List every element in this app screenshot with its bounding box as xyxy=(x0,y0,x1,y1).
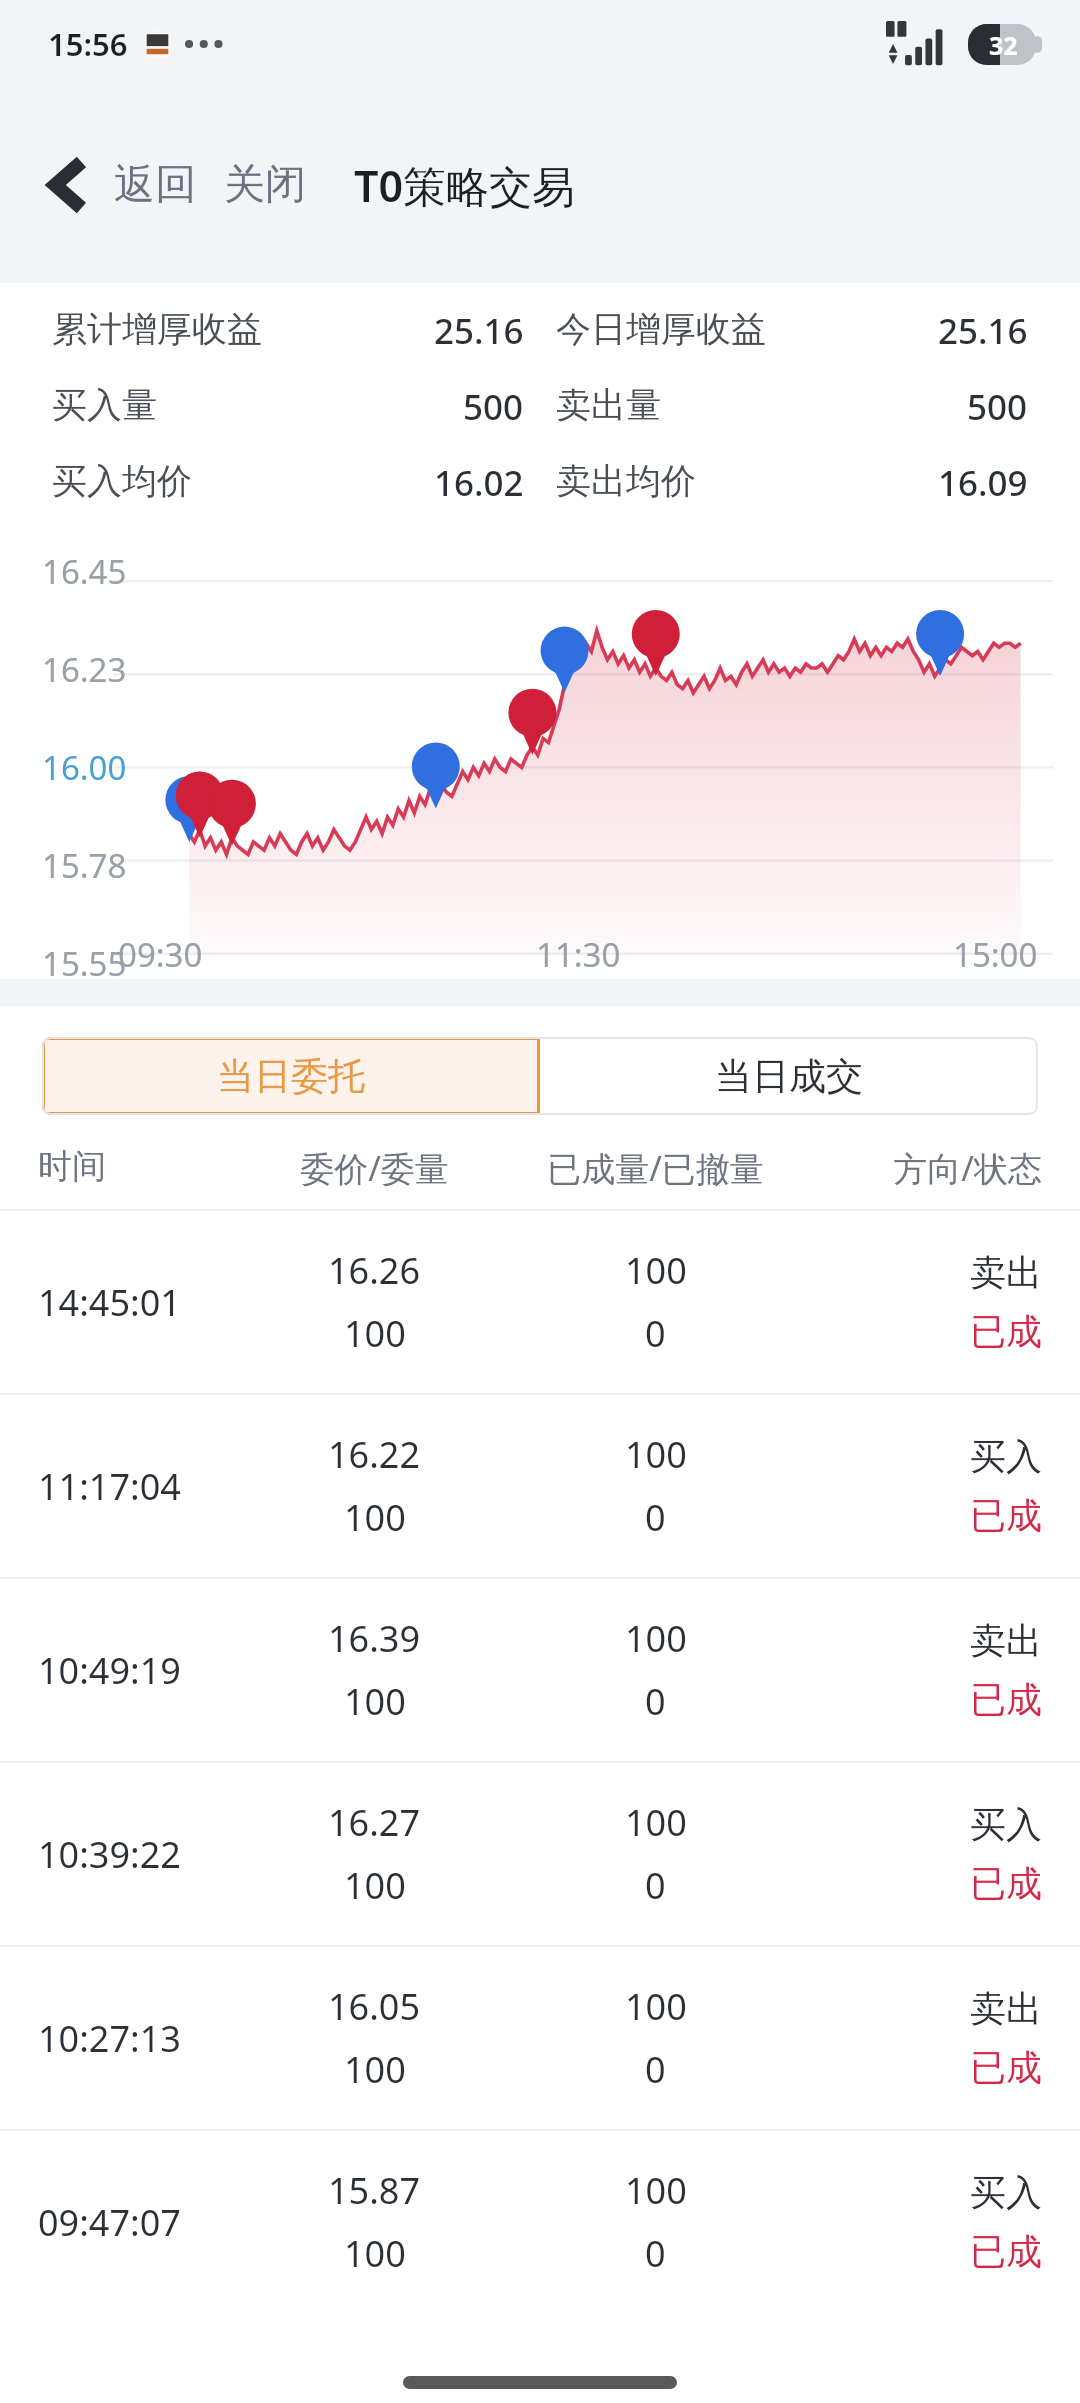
staticText: 16.45 xyxy=(42,549,127,594)
staticText: 100 xyxy=(625,1430,687,1479)
staticText: 卖出 xyxy=(970,1250,1042,1295)
staticText: T0策略交易 xyxy=(354,156,576,215)
button[interactable]: 返回 xyxy=(30,147,106,223)
staticText: 卖出 xyxy=(970,1618,1042,1663)
staticText: 10:39:22 xyxy=(38,1830,249,1879)
staticText: 关闭 xyxy=(224,159,306,211)
staticText: 100 xyxy=(344,2229,406,2278)
staticText: 25.16 xyxy=(434,307,524,355)
staticText: 15.78 xyxy=(42,843,127,888)
staticText: 已成 xyxy=(970,2229,1042,2274)
staticText: 今日增厚收益 xyxy=(556,307,766,351)
staticText: 16.27 xyxy=(328,1798,421,1847)
staticText: 买入 xyxy=(970,1802,1042,1847)
staticText: 100 xyxy=(625,2166,687,2215)
staticText: 100 xyxy=(344,1677,406,1726)
staticText: 16.09 xyxy=(938,459,1028,507)
staticText: 买入 xyxy=(970,2170,1042,2215)
staticText: 15:56 xyxy=(48,23,128,65)
staticText: 500 xyxy=(463,383,524,431)
staticText: 16.22 xyxy=(328,1430,421,1479)
staticText: 委价/委量 xyxy=(249,1145,500,1191)
staticText: 100 xyxy=(625,1982,687,2031)
staticText: 卖出均价 xyxy=(556,459,696,503)
staticText: 0 xyxy=(645,1677,666,1726)
staticText: 100 xyxy=(625,1798,687,1847)
staticText: 已成量/已撤量 xyxy=(500,1145,811,1191)
staticText: 25.16 xyxy=(938,307,1028,355)
button[interactable]: 09:47:07 xyxy=(0,2131,1080,2313)
staticText: 买入 xyxy=(970,1434,1042,1479)
staticText: 买入量 xyxy=(52,383,157,427)
staticText: 0 xyxy=(645,1309,666,1358)
staticText: 0 xyxy=(645,2229,666,2278)
staticText: 卖出 xyxy=(970,1986,1042,2031)
staticText: 已成 xyxy=(970,2045,1042,2090)
staticText: 16.26 xyxy=(328,1246,421,1295)
staticText: 方向/状态 xyxy=(811,1145,1042,1191)
staticText: 16.23 xyxy=(42,647,127,692)
staticText: 15.55 xyxy=(42,941,127,986)
staticText: 卖出量 xyxy=(556,383,661,427)
staticText: 100 xyxy=(625,1246,687,1295)
staticText: 16.02 xyxy=(434,459,524,507)
staticText: 100 xyxy=(344,1861,406,1910)
button[interactable]: 11:17:04 xyxy=(0,1395,1080,1577)
button[interactable]: 14:45:01 xyxy=(0,1211,1080,1393)
staticText: 0 xyxy=(645,1861,666,1910)
staticText: 10:49:19 xyxy=(38,1646,249,1695)
staticText: 09:30 xyxy=(118,932,203,977)
button[interactable]: 关闭 xyxy=(216,149,314,221)
button[interactable]: 返回 xyxy=(106,149,204,221)
staticText: 买入均价 xyxy=(52,459,192,503)
staticText: 09:47:07 xyxy=(38,2198,249,2247)
staticText: 16.05 xyxy=(328,1982,421,2031)
staticText: 100 xyxy=(344,1309,406,1358)
button[interactable]: 10:49:19 xyxy=(0,1579,1080,1761)
staticText: 已成 xyxy=(970,1861,1042,1906)
staticText: 0 xyxy=(645,2045,666,2094)
staticText: 当日成交 xyxy=(715,1053,863,1100)
staticText: 16.39 xyxy=(328,1614,421,1663)
staticText: 已成 xyxy=(970,1493,1042,1538)
staticText: 11:30 xyxy=(536,932,621,977)
staticText: 时间 xyxy=(38,1145,249,1188)
staticText: 返回 xyxy=(114,159,196,211)
staticText: 14:45:01 xyxy=(38,1278,249,1327)
staticText: 15:00 xyxy=(953,932,1038,977)
staticText: 0 xyxy=(645,1493,666,1542)
staticText: 当日委托 xyxy=(217,1053,365,1100)
staticText: 100 xyxy=(344,2045,406,2094)
button[interactable]: 10:27:13 xyxy=(0,1947,1080,2129)
staticText: 500 xyxy=(967,383,1028,431)
staticText: 10:27:13 xyxy=(38,2014,249,2063)
button[interactable]: 当日委托 xyxy=(42,1037,540,1115)
staticText: 15.87 xyxy=(328,2166,421,2215)
button[interactable]: 当日成交 xyxy=(540,1037,1038,1115)
staticText: 16.00 xyxy=(42,745,127,790)
staticText: 11:17:04 xyxy=(38,1462,249,1511)
staticText: 32 xyxy=(989,28,1018,62)
staticText: 已成 xyxy=(970,1309,1042,1354)
staticText: 100 xyxy=(344,1493,406,1542)
button[interactable]: 10:39:22 xyxy=(0,1763,1080,1945)
staticText: 已成 xyxy=(970,1677,1042,1722)
staticText: 100 xyxy=(625,1614,687,1663)
staticText: 累计增厚收益 xyxy=(52,307,262,351)
